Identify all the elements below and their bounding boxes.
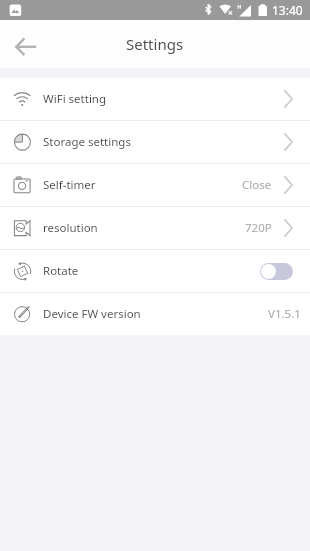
button[interactable]: Self-timer <box>0 164 310 206</box>
button[interactable]: Storage settings <box>0 121 310 163</box>
button[interactable]: WiFi setting <box>0 78 310 120</box>
staticText: Self-timer <box>43 177 96 193</box>
button[interactable]: Rotate <box>0 250 310 292</box>
staticText: WiFi setting <box>43 91 107 107</box>
staticText: 720P <box>245 220 272 236</box>
button[interactable]: resolution <box>0 207 310 249</box>
staticText: Rotate <box>43 263 79 279</box>
button[interactable]: Rotate toggle <box>260 263 293 280</box>
staticText: Storage settings <box>43 134 131 150</box>
staticText: V1.5.1 <box>268 306 301 322</box>
staticText: 13:40 <box>272 2 303 18</box>
button[interactable]: Back <box>0 20 52 68</box>
staticText: Device FW version <box>43 306 141 322</box>
staticText: Settings <box>126 34 184 54</box>
button[interactable]: Device FW version <box>0 293 310 335</box>
staticText: resolution <box>43 220 98 236</box>
staticText: Close <box>242 177 272 193</box>
